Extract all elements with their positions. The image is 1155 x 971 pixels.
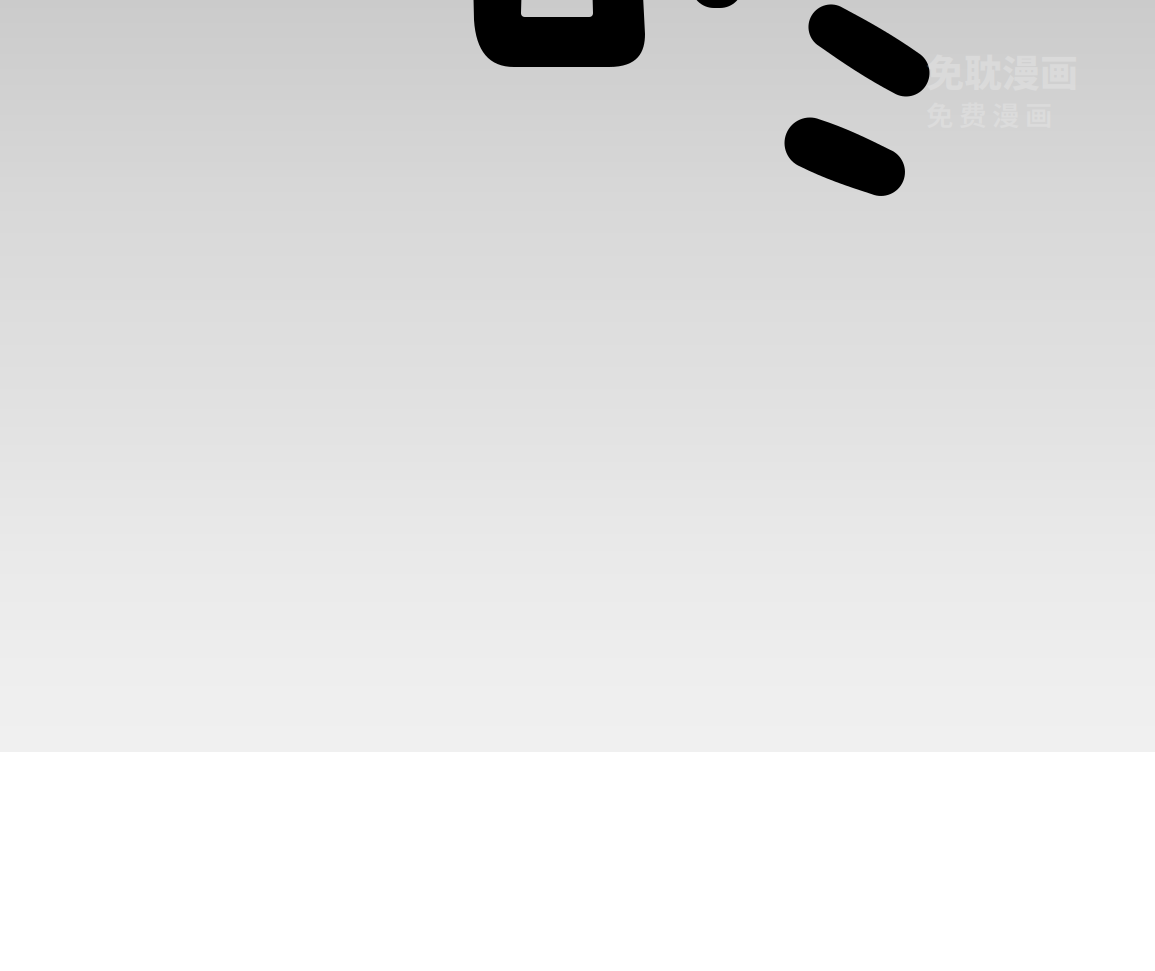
staticText: 免 费 漫 画	[926, 94, 1052, 134]
button[interactable]: Comic page	[0, 0, 1155, 752]
staticText: 免耽漫画	[926, 43, 1078, 98]
